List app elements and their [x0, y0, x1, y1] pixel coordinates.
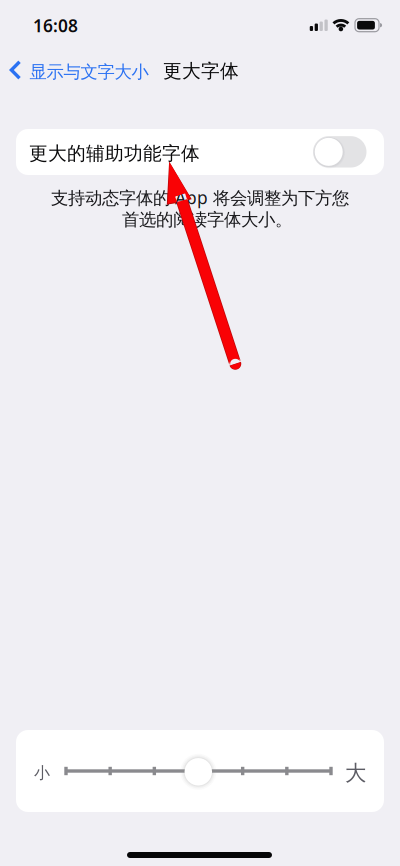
- staticText: 小: [34, 763, 50, 783]
- staticText: 更大的辅助功能字体: [29, 142, 200, 165]
- staticText: 支持动态字体的 App 将会调整为下方您: [51, 186, 349, 209]
- staticText: 显示与文字大小: [29, 61, 148, 83]
- button[interactable]: 更大的辅助功能字体: [16, 129, 384, 175]
- button[interactable]: 字体大小: [16, 730, 384, 812]
- staticText: 更大字体: [163, 59, 239, 82]
- staticText: 首选的阅读字体大小。: [122, 209, 292, 230]
- button[interactable]: 显示与文字大小: [0, 51, 154, 91]
- staticText: 大: [345, 760, 366, 786]
- staticText: 16:08: [33, 14, 78, 37]
